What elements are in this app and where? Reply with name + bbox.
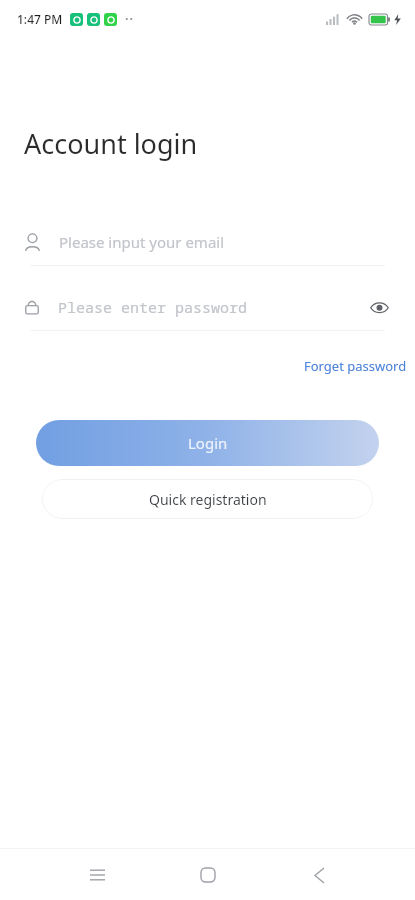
button[interactable]: Quick registration xyxy=(42,479,373,519)
staticText: Please enter password xyxy=(58,297,248,317)
staticText: Quick registration xyxy=(149,490,267,509)
button[interactable]: Login xyxy=(36,420,379,466)
button[interactable]: Recent apps xyxy=(73,851,121,899)
button[interactable]: Please input your email xyxy=(0,219,415,265)
button[interactable]: Home xyxy=(184,851,232,899)
button[interactable]: Forget password xyxy=(296,351,415,381)
staticText: Please input your email xyxy=(59,232,225,252)
staticText: 1:47 PM xyxy=(17,11,63,27)
staticText: Forget password xyxy=(304,357,407,375)
staticText: Account login xyxy=(24,125,198,162)
button[interactable]: Show password xyxy=(365,293,393,321)
staticText: Login xyxy=(188,433,228,453)
button[interactable]: Please enter password xyxy=(0,284,415,330)
button[interactable]: Back xyxy=(295,851,343,899)
